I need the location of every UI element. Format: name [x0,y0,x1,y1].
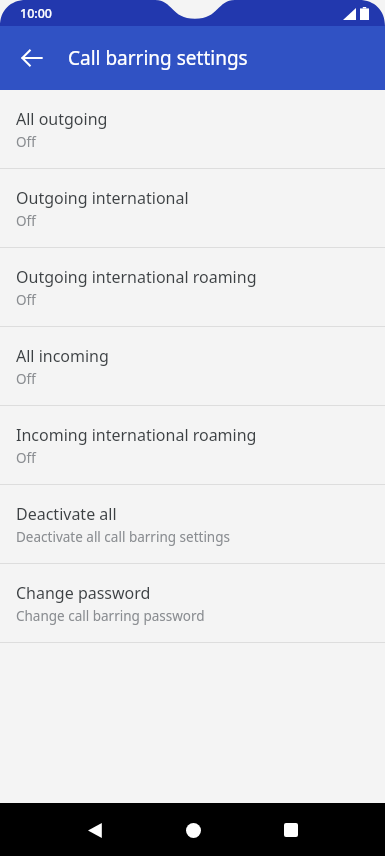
staticText: Deactivate all call barring settings [16,528,230,546]
staticText: Outgoing international roaming [16,266,257,288]
staticText: Off [16,291,36,309]
button[interactable]: Recent apps [270,809,312,851]
staticText: 10:00 [20,5,53,22]
button[interactable]: Outgoing international roaming [0,248,385,326]
staticText: Off [16,212,36,230]
staticText: Change call barring password [16,607,205,625]
button[interactable]: Incoming international roaming [0,406,385,484]
button[interactable]: Back [10,36,54,80]
staticText: Deactivate all [16,503,117,525]
button[interactable]: Home [172,809,214,851]
staticText: Call barring settings [68,45,248,71]
button[interactable]: Back [74,809,116,851]
staticText: Off [16,449,36,467]
staticText: Off [16,370,36,388]
button[interactable]: Deactivate all [0,485,385,563]
button[interactable]: All incoming [0,327,385,405]
button[interactable]: Change password [0,564,385,642]
staticText: Change password [16,582,151,604]
staticText: Outgoing international [16,187,189,209]
staticText: All incoming [16,345,109,367]
button[interactable]: Outgoing international [0,169,385,247]
staticText: All outgoing [16,108,108,130]
button[interactable]: All outgoing [0,90,385,168]
staticText: Off [16,133,36,151]
staticText: Incoming international roaming [16,424,257,446]
